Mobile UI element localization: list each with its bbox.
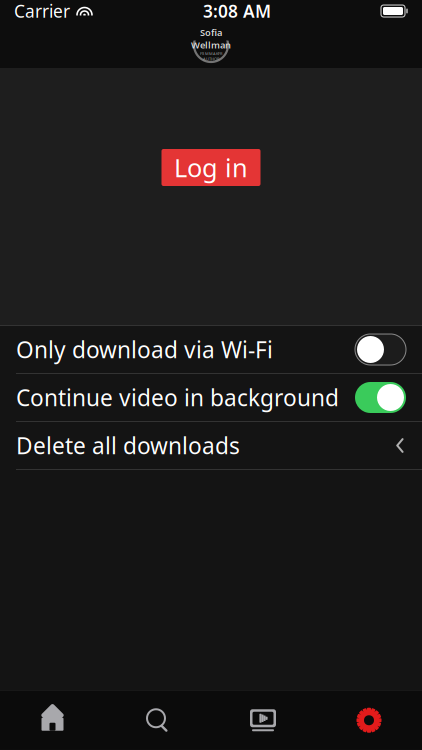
- button[interactable]: Delete all downloads: [0, 422, 422, 469]
- button[interactable]: Search: [105, 691, 210, 750]
- button[interactable]: Videos: [210, 691, 316, 750]
- staticText: 3:08 AM: [203, 0, 271, 22]
- button[interactable]: Only download via Wi-Fi: [0, 326, 422, 373]
- staticText: Only download via Wi-Fi: [16, 334, 273, 364]
- staticText: FILMMAKER: [200, 51, 222, 56]
- staticText: Continue video in background: [16, 382, 339, 412]
- staticText: Wellman: [191, 39, 231, 51]
- staticText: Sofia: [200, 26, 222, 39]
- staticText: Log in: [174, 151, 248, 184]
- button[interactable]: On: [355, 382, 406, 413]
- staticText: Delete all downloads: [16, 430, 240, 460]
- button[interactable]: Settings: [316, 691, 422, 750]
- button[interactable]: Log in: [161, 149, 260, 186]
- staticText: AUTHOR: [203, 56, 219, 62]
- button[interactable]: Continue video in background: [0, 374, 422, 421]
- button[interactable]: Off: [355, 334, 406, 365]
- staticText: Carrier: [14, 0, 70, 22]
- button[interactable]: Home: [0, 691, 105, 750]
